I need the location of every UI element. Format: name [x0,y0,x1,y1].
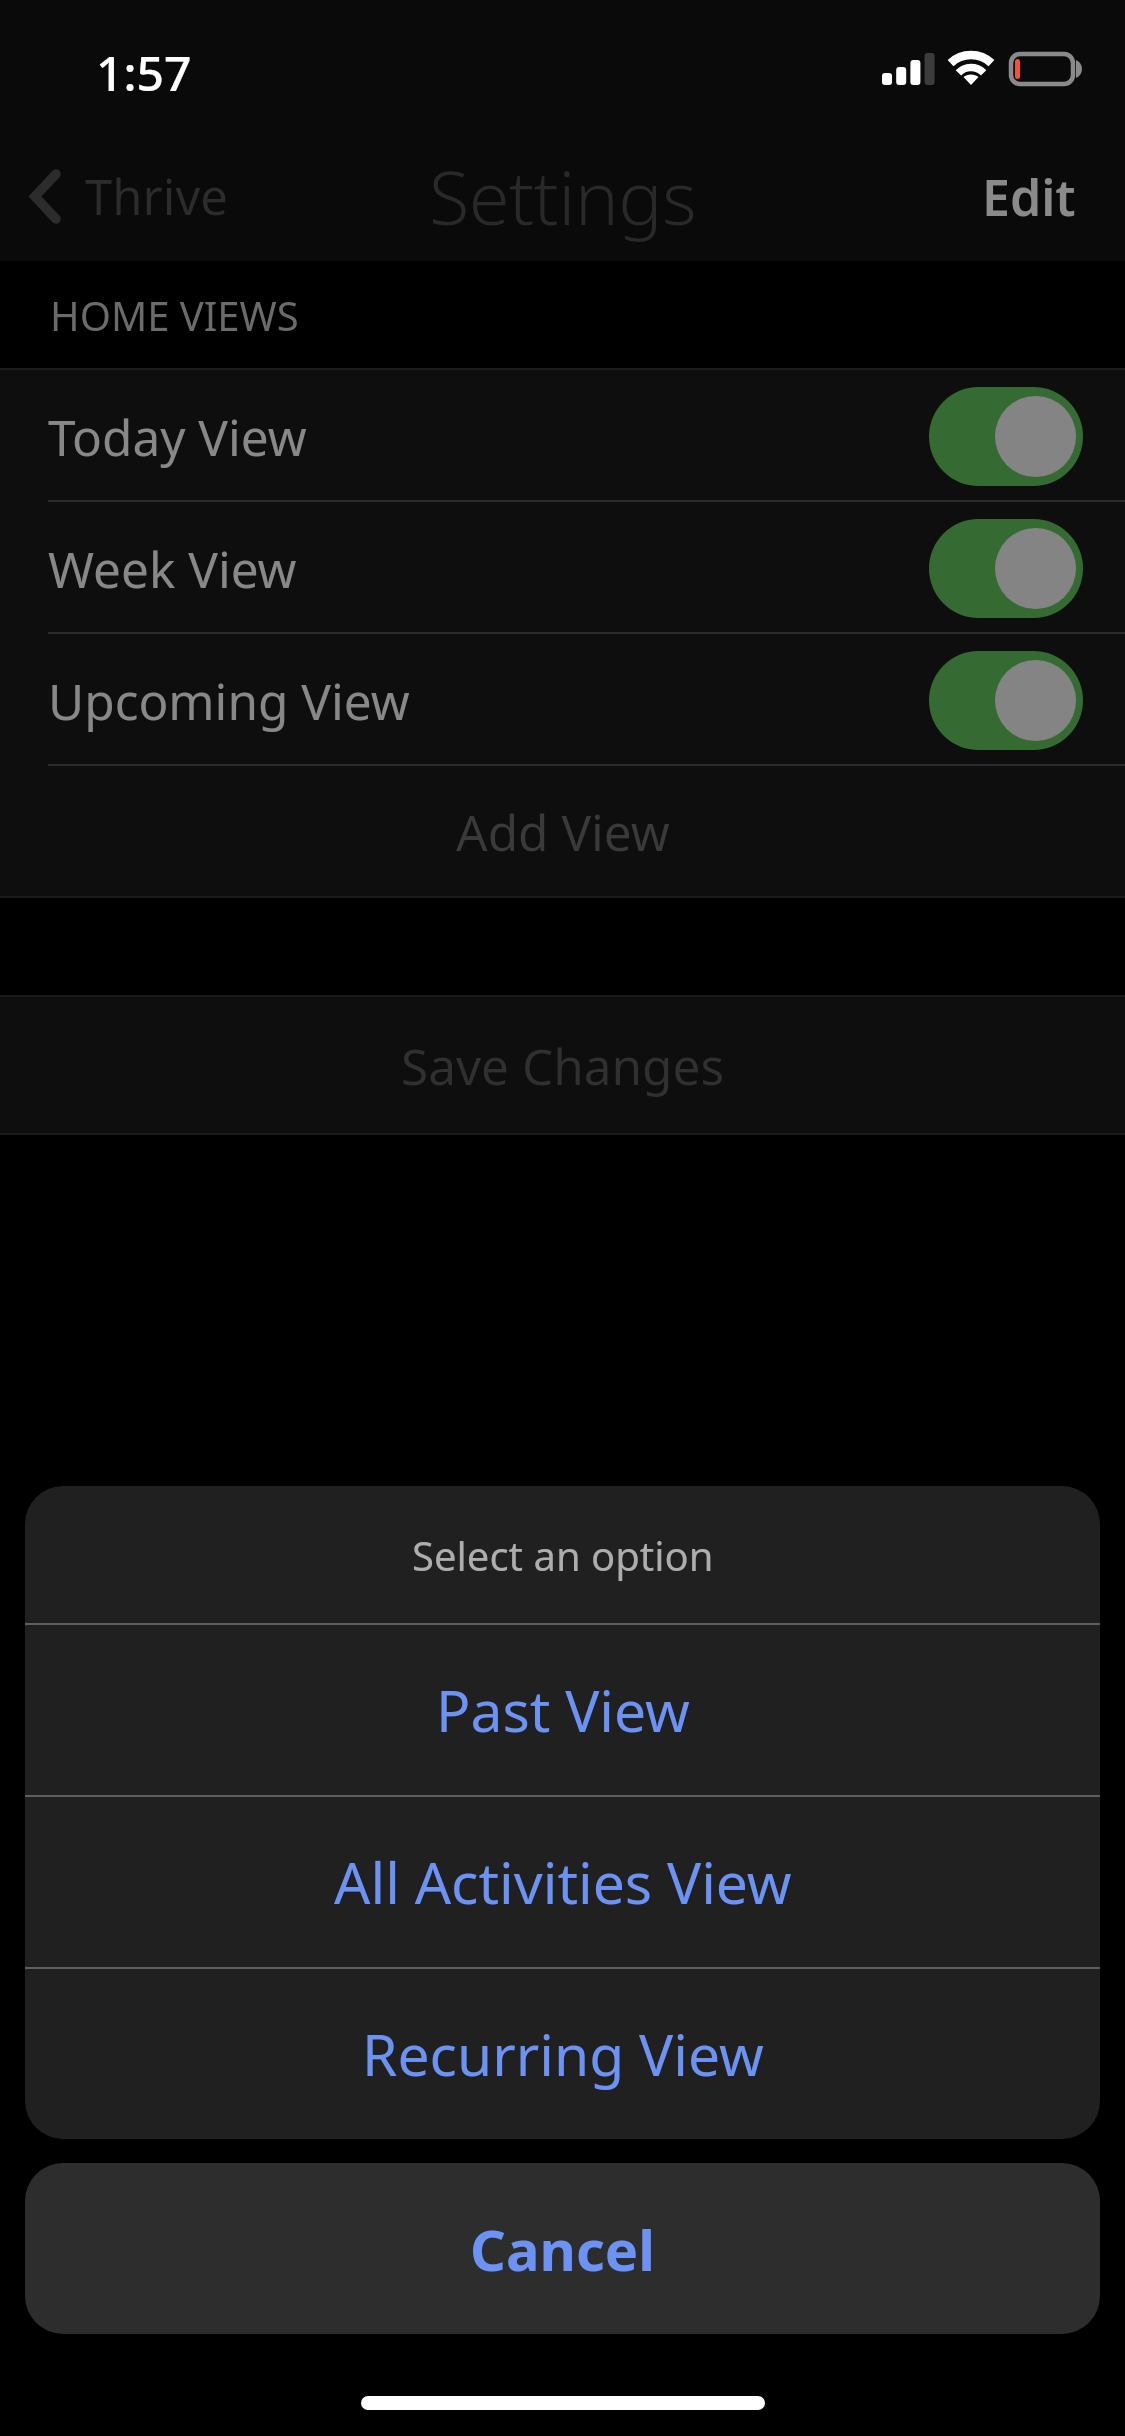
staticText: HOME VIEWS [50,288,299,342]
button[interactable]: Back to Thrive [0,132,252,261]
button[interactable]: Save Changes [0,995,1125,1135]
staticText: Save Changes [401,1032,725,1099]
button[interactable]: Recurring View [25,1969,1100,2139]
button[interactable]: Upcoming View [0,634,1125,764]
button[interactable]: Toggle Today View [929,387,1083,486]
staticText: Edit [982,163,1076,231]
button[interactable]: Week View [0,502,1125,632]
staticText: Add View [456,798,670,865]
button[interactable]: Cancel [25,2163,1100,2334]
staticText: Past View [436,1671,690,1749]
button[interactable]: Add View [0,766,1125,896]
staticText: Week View [48,535,929,602]
button[interactable]: Today View [0,370,1125,500]
staticText: Select an option [412,1528,714,1582]
button[interactable]: Toggle Week View [929,519,1083,618]
staticText: 1:57 [96,40,192,105]
button[interactable]: All Activities View [25,1797,1100,1967]
staticText: All Activities View [334,1843,792,1921]
staticText: Cancel [470,2211,655,2287]
staticText: Today View [48,403,929,470]
button[interactable]: Toggle Upcoming View [929,651,1083,750]
staticText: Recurring View [362,2015,764,2093]
staticText: Thrive [85,163,228,230]
button[interactable]: Edit [933,132,1125,261]
staticText: Settings [429,146,696,247]
staticText: Upcoming View [48,667,929,734]
button[interactable]: Past View [25,1625,1100,1795]
